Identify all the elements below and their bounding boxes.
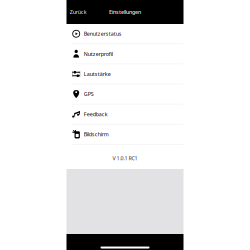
button[interactable]: Benutzerstatus (66, 24, 183, 44)
button[interactable]: Zurück (66, 4, 90, 20)
staticText: Feedback (84, 111, 108, 118)
button[interactable]: Nutzerprofil (66, 44, 183, 64)
button[interactable]: GPS (66, 84, 183, 104)
button[interactable]: Bildschirm (66, 124, 183, 145)
staticText: Nutzerprofil (84, 50, 113, 57)
staticText: GPS (84, 90, 94, 98)
staticText: Bildschirm (84, 131, 109, 138)
button[interactable]: Feedback (66, 104, 183, 124)
staticText: V 1.0.1 RC1 (112, 155, 137, 162)
staticText: Zurück (70, 8, 87, 16)
staticText: Einstellungen (109, 8, 141, 16)
button[interactable]: Lautstärke (66, 64, 183, 84)
staticText: Lautstärke (84, 70, 111, 77)
staticText: Benutzerstatus (84, 30, 122, 37)
